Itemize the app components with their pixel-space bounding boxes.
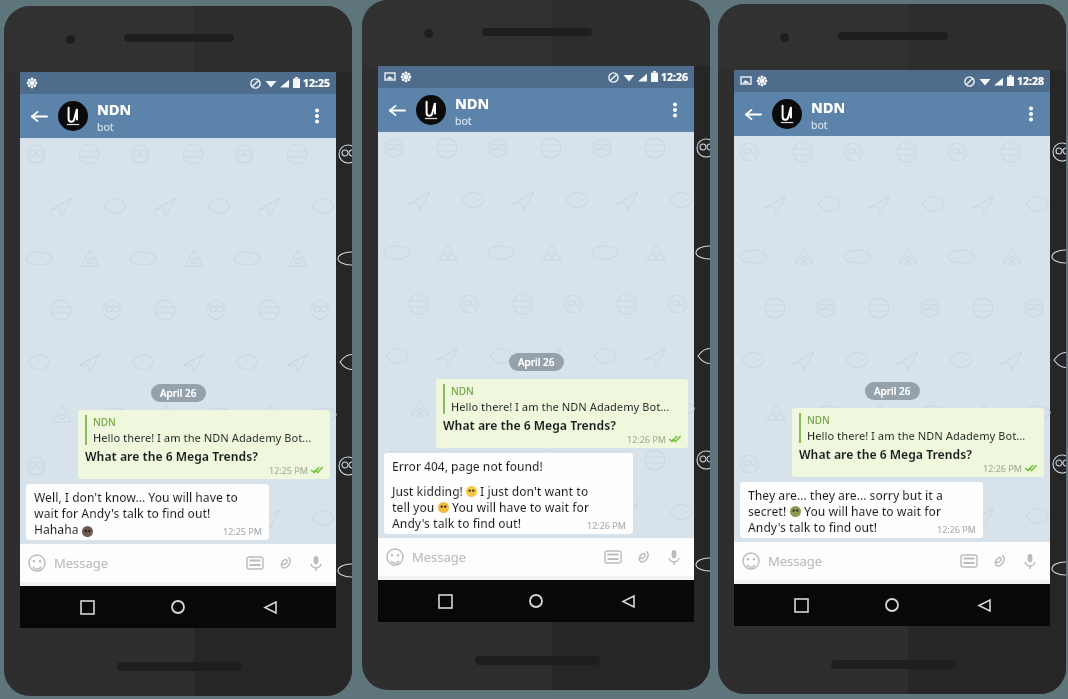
button[interactable]: Back [603,580,653,622]
staticText: 12:26 PM [587,519,626,531]
staticText: You will have to wait for [449,499,589,515]
button[interactable]: Back [959,584,1009,626]
staticText: April 26 [160,386,197,400]
staticText: 12:25 PM [223,525,262,537]
button[interactable]: Keyboard [240,544,270,582]
button[interactable]: Home [511,580,561,622]
button[interactable]: Attach file [628,538,658,576]
staticText: What are the 6 Mega Trends? [799,446,972,462]
button[interactable]: Attach file [270,544,300,582]
button[interactable]: Home [153,586,203,628]
button[interactable]: Emoji [378,538,412,576]
staticText: NDN [455,93,490,113]
button[interactable]: NDN [792,408,1044,477]
staticText: Andy's talk to find out! [748,519,877,535]
button[interactable]: More options [1016,92,1046,136]
button[interactable]: Recent apps [62,586,112,628]
button[interactable]: Back [245,586,295,628]
button[interactable]: Go back [389,583,683,615]
button[interactable]: Back [734,92,772,136]
staticText: I just don't want to [477,483,589,499]
staticText: Error 404, page not found! [392,458,543,474]
button[interactable]: More options [660,88,690,132]
staticText: Message [412,548,467,566]
staticText: secret! [748,503,790,519]
button[interactable]: Go back [31,589,325,621]
button[interactable]: NDN [436,379,688,448]
staticText: 12:26 [661,70,688,84]
staticText: Hello there! I am the NDN Adademy Bot... [807,428,1026,443]
staticText: bot [97,120,114,134]
staticText: What are the 6 Mega Trends? [85,448,258,464]
button[interactable]: Record voice message [300,544,332,582]
button[interactable]: They are... they are... sorry but it a [740,482,983,538]
staticText: Hello there! I am the NDN Adademy Bot... [451,399,670,414]
button[interactable]: Go back [745,587,1039,619]
staticText: Andy's talk to find out! [392,515,521,531]
staticText: Well, I don't know... You will have to [34,489,238,505]
staticText: 12:26 PM [937,523,976,535]
staticText: What are the 6 Mega Trends? [443,417,616,433]
staticText: tell you [392,499,438,515]
button[interactable]: Recent apps [776,584,826,626]
staticText: NDN [97,99,132,119]
button[interactable]: Profile photo [58,101,88,131]
button[interactable]: Keyboard [598,538,628,576]
staticText: 12:25 [303,76,330,90]
button[interactable]: Home [867,584,917,626]
staticText: bot [811,118,828,132]
staticText: Go back [521,590,571,608]
staticText: Just kidding! [392,483,466,499]
staticText: NDN [93,415,116,429]
button[interactable]: More options [302,94,332,138]
staticText: Go back [163,596,213,614]
button[interactable]: Emoji [20,544,54,582]
button[interactable]: Keyboard [954,542,984,580]
staticText: April 26 [518,355,555,369]
staticText: NDN [811,97,846,117]
staticText: bot [455,114,472,128]
staticText: Hahaha [34,521,82,537]
staticText: They are... they are... sorry but it a [748,487,943,503]
staticText: Hello there! I am the NDN Adademy Bot... [93,430,312,445]
staticText: 12:26 PM [983,462,1022,474]
staticText: 12:25 PM [269,464,308,476]
button[interactable]: Profile photo [772,99,802,129]
button[interactable]: Emoji [734,542,768,580]
staticText: You will have to wait for [801,503,941,519]
button[interactable]: Profile photo [416,95,446,125]
staticText: NDN [807,413,830,427]
staticText: NDN [451,384,474,398]
button[interactable]: Well, I don't know... You will have to [26,484,269,540]
staticText: April 26 [874,384,911,398]
button[interactable]: Recent apps [420,580,470,622]
staticText: Message [768,552,823,570]
staticText: Go back [877,594,927,612]
staticText: Message [54,554,109,572]
staticText: 12:28 [1017,74,1044,88]
staticText: wait for Andy's talk to find out! [34,505,211,521]
button[interactable]: Record voice message [1014,542,1046,580]
button[interactable]: Error 404, page not found! [384,453,633,534]
staticText: 12:26 PM [627,433,666,445]
button[interactable]: Back [378,88,416,132]
button[interactable]: NDN [78,410,330,479]
button[interactable]: Back [20,94,58,138]
button[interactable]: Attach file [984,542,1014,580]
button[interactable]: Record voice message [658,538,690,576]
